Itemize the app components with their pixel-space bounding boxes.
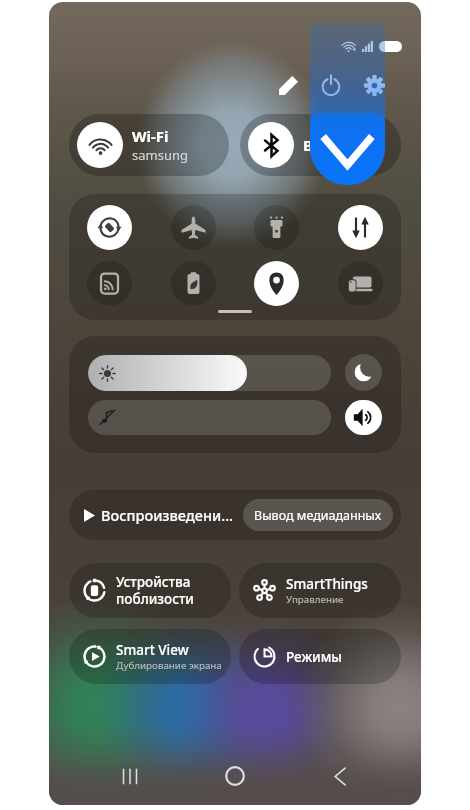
button[interactable]: Sound mode (345, 400, 382, 435)
staticText: Bluetooth (303, 135, 378, 155)
button[interactable]: Воспроизведени... (69, 490, 401, 540)
button[interactable]: Home (211, 752, 259, 800)
staticText: SmartThings (286, 575, 368, 593)
button[interactable]: SmartThings (239, 563, 401, 618)
button[interactable]: Back (316, 752, 364, 800)
button[interactable]: Smart View (69, 629, 231, 684)
button[interactable]: Mobile data (338, 205, 383, 250)
staticText: Устройства поблизости (116, 573, 194, 608)
button[interactable]: Вывод медиаданных (243, 499, 393, 531)
button[interactable]: Modes (239, 629, 401, 684)
staticText: Дублирование экрана (116, 659, 222, 672)
button[interactable]: Nearby Share (87, 261, 132, 306)
staticText: Smart View (116, 641, 189, 659)
button[interactable]: Airplane mode (171, 205, 216, 250)
button[interactable]: Auto rotate (87, 205, 132, 250)
button[interactable]: Settings (354, 65, 394, 105)
button[interactable]: Power off (311, 65, 351, 105)
button[interactable]: Wi-Fi (69, 114, 229, 176)
button[interactable]: Dark mode (345, 354, 382, 391)
staticText: Wi-Fi (132, 126, 169, 146)
staticText: samsung (132, 146, 188, 164)
button[interactable]: Nearby devices (69, 563, 231, 618)
button[interactable]: Flashlight (254, 205, 299, 250)
staticText: Вывод медиаданных (254, 507, 382, 524)
staticText: Воспроизведени... (101, 505, 234, 525)
staticText: Режимы (286, 648, 342, 666)
staticText: Управление (286, 593, 344, 606)
button[interactable]: Power saving (171, 261, 216, 306)
button[interactable]: Brightness (88, 355, 331, 391)
button[interactable]: Location (254, 261, 299, 306)
button[interactable]: Edit (268, 65, 308, 105)
button[interactable]: Collapse quick panel (310, 23, 385, 185)
button[interactable]: Recents (106, 752, 154, 800)
button[interactable]: Link to Windows (338, 261, 383, 306)
button[interactable]: Media volume (88, 400, 331, 435)
button[interactable]: Bluetooth (240, 114, 401, 176)
